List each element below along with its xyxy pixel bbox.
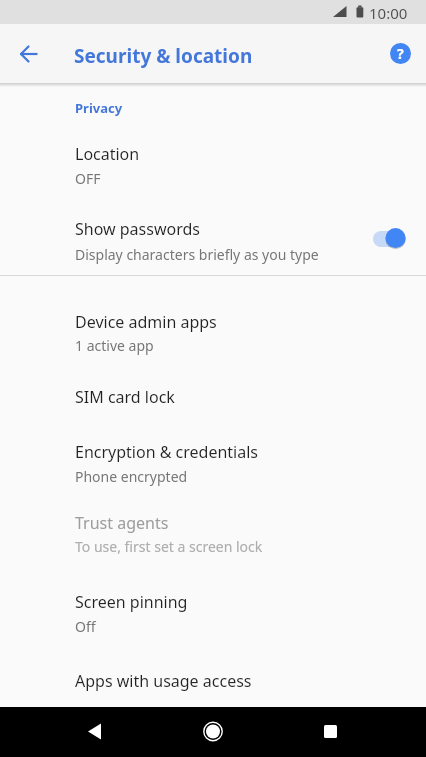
staticText: Trust agents [75, 512, 169, 534]
staticText: OFF [75, 169, 101, 188]
button[interactable] [310, 712, 350, 752]
staticText: Screen pinning [75, 591, 188, 613]
staticText: Off [75, 617, 96, 636]
button[interactable] [0, 426, 426, 498]
staticText: 1 active app [75, 336, 154, 355]
staticText: Show passwords [75, 218, 200, 240]
staticText: Device admin apps [75, 311, 217, 333]
button[interactable] [0, 369, 426, 425]
button[interactable] [0, 650, 426, 707]
staticText: Encryption & credentials [75, 441, 258, 463]
button[interactable]: ? [390, 43, 411, 64]
button[interactable] [0, 203, 426, 275]
staticText: Location [75, 143, 140, 165]
staticText: Display characters briefly as you type [75, 245, 319, 264]
staticText: To use, first set a screen lock [75, 537, 263, 556]
button[interactable] [193, 712, 233, 752]
staticText: Apps with usage access [75, 670, 252, 692]
staticText: Privacy [75, 99, 123, 117]
button[interactable] [0, 131, 426, 203]
button[interactable] [0, 572, 426, 644]
button[interactable] [75, 712, 115, 752]
staticText: ? [397, 44, 404, 63]
button[interactable] [0, 296, 426, 368]
staticText: Security & location [74, 43, 253, 69]
staticText: SIM card lock [75, 386, 175, 408]
staticText: Phone encrypted [75, 467, 188, 486]
staticText: 10:00 [369, 3, 408, 23]
button[interactable] [0, 498, 426, 570]
button[interactable] [13, 38, 45, 70]
